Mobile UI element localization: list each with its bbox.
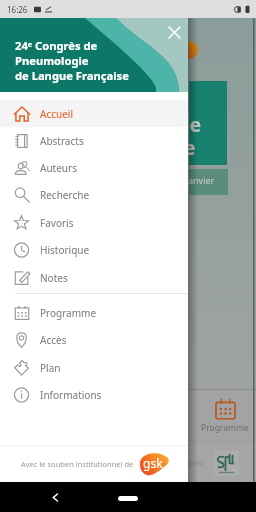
button[interactable]: Plan: [0, 354, 188, 381]
button[interactable]: Close: [169, 27, 180, 38]
staticText: Programme: [40, 306, 97, 320]
staticText: 24ᵉ Congrès de: [15, 38, 98, 53]
staticText: e: [184, 135, 196, 161]
staticText: Abstracts: [40, 134, 84, 148]
button[interactable]: Notes: [0, 264, 188, 291]
staticText: Auteurs: [40, 161, 77, 175]
button[interactable]: Historique: [0, 236, 188, 263]
button[interactable]: Back: [50, 492, 61, 503]
button[interactable]: Auteurs: [0, 154, 188, 181]
button[interactable]: Programme: [0, 299, 188, 326]
staticText: Plan: [40, 361, 61, 375]
button[interactable]: Recherche: [0, 181, 188, 208]
staticText: Historique: [40, 243, 90, 257]
staticText: avec: [187, 457, 204, 468]
staticText: Favoris: [40, 216, 74, 230]
button[interactable]: Abstracts: [0, 127, 188, 154]
staticText: de Langue Française: [15, 68, 129, 83]
staticText: le: [184, 112, 202, 138]
staticText: Accueil: [40, 107, 73, 121]
staticText: Avec le soutien institutionnel de: [21, 459, 134, 469]
staticText: Pneumologie: [15, 53, 89, 68]
staticText: anvier: [188, 174, 215, 186]
staticText: 16:26: [7, 4, 28, 15]
button[interactable]: Accueil: [0, 100, 188, 127]
staticText: Programme: [201, 422, 249, 434]
staticText: Accès: [40, 333, 67, 347]
button[interactable]: Favoris: [0, 209, 188, 236]
other: Programme: [215, 399, 236, 420]
staticText: Notes: [40, 271, 68, 285]
staticText: Informations: [40, 388, 102, 402]
staticText: gsk: [143, 455, 163, 471]
staticText: Recherche: [40, 188, 90, 202]
button[interactable]: Informations: [0, 381, 188, 408]
button[interactable]: Home: [118, 496, 138, 501]
button[interactable]: Accès: [0, 326, 188, 353]
